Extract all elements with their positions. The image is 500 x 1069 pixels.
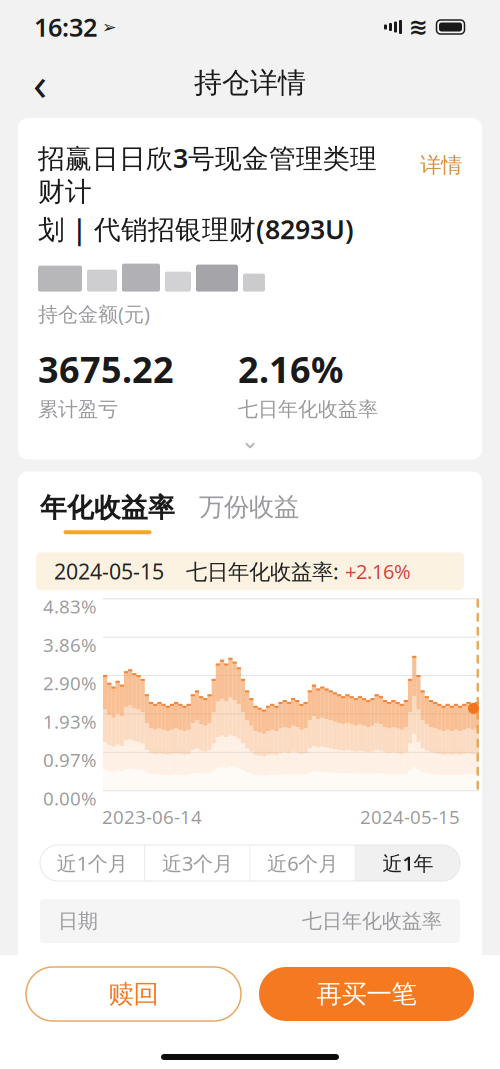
staticText: 0.00% — [43, 786, 97, 811]
staticText: ⌄ — [240, 428, 259, 453]
button[interactable]: 万份收益 — [199, 491, 299, 533]
staticText: 2.16% — [238, 345, 343, 393]
staticText: 持仓详情 — [194, 66, 306, 100]
staticText: 赎回 — [108, 978, 158, 1009]
staticText: 2023-06-14 — [102, 804, 202, 829]
button[interactable]: 近6个月 — [250, 845, 355, 881]
staticText: 累计盈亏 — [38, 397, 118, 421]
button[interactable]: 返回 — [16, 59, 64, 107]
staticText: 3.86% — [43, 632, 97, 657]
staticText: 16:32 — [34, 10, 97, 44]
button[interactable]: 近1年 — [356, 845, 460, 881]
button[interactable]: 近1个月 — [40, 845, 144, 881]
staticText: 2024-05-15 — [54, 557, 164, 585]
staticText: 0.97% — [43, 747, 97, 772]
button[interactable]: 年化收益率 — [40, 491, 175, 534]
staticText: 近3个月 — [162, 850, 233, 876]
staticText: 详情 — [420, 152, 462, 178]
staticText: ≋ — [409, 14, 428, 40]
staticText: 年化收益率 — [40, 491, 175, 524]
staticText: 3675.22 — [38, 345, 174, 393]
staticText: 七日年化收益率 — [302, 909, 442, 933]
staticText: 七日年化收益率: — [186, 557, 345, 585]
staticText: ➢ — [102, 17, 117, 37]
staticText: 4.83% — [43, 594, 97, 619]
staticText: 2.90% — [43, 671, 97, 695]
staticText: 2.16% — [374, 950, 442, 982]
staticText: 日期 — [58, 909, 98, 933]
staticText: 2024-05-15 — [360, 804, 460, 829]
button[interactable]: 近3个月 — [145, 845, 249, 881]
staticText: +2.16% — [345, 558, 411, 585]
staticText: ‹ — [33, 53, 47, 113]
staticText: 持仓金额(元) — [38, 301, 150, 327]
staticText: 划 | 代销招银理财(8293U) — [38, 211, 354, 247]
staticText: 1.93% — [43, 709, 97, 734]
staticText: 近1年 — [382, 850, 433, 876]
staticText: 七日年化收益率 — [238, 397, 378, 421]
staticText: 2024-05-15 — [58, 950, 186, 982]
button[interactable]: 再买一笔 — [259, 967, 474, 1021]
staticText: 近6个月 — [267, 850, 338, 876]
button[interactable]: 详情 — [420, 140, 462, 178]
staticText: 万份收益 — [199, 491, 299, 523]
button[interactable]: 赎回 — [26, 967, 241, 1021]
staticText: 再买一笔 — [316, 978, 416, 1009]
staticText: 招赢日日欣3号现金管理类理财计 — [38, 140, 377, 208]
staticText: 近1个月 — [57, 850, 128, 876]
